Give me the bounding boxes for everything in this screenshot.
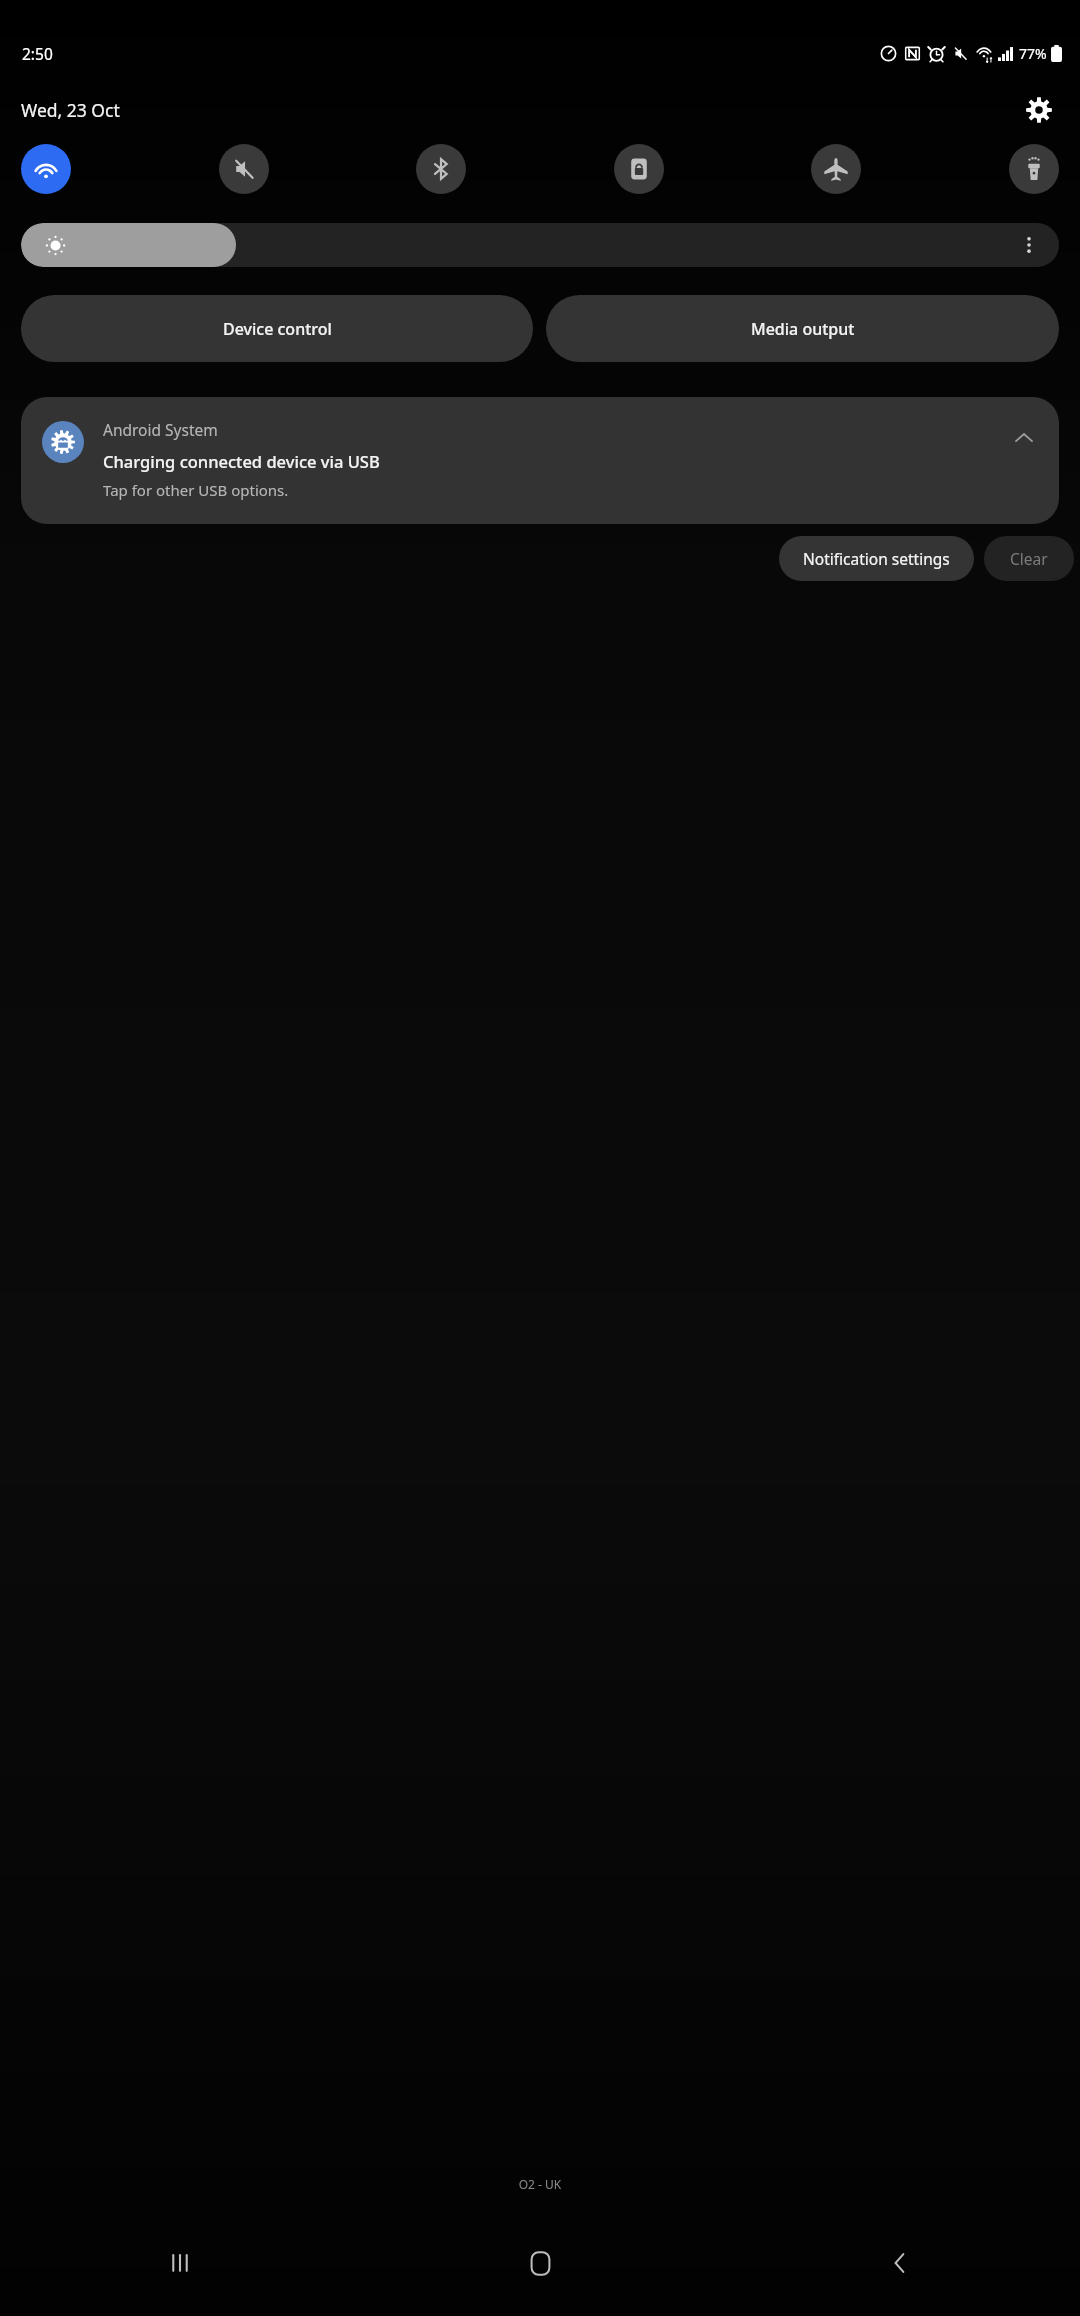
button[interactable]: Home — [360, 2234, 720, 2292]
staticText: 77% — [1019, 44, 1047, 63]
staticText: Tap for other USB options. — [103, 480, 289, 500]
staticText: 2:50 — [22, 43, 53, 64]
button[interactable]: Wi-Fi — [21, 144, 71, 194]
button[interactable]: Notification settings — [779, 536, 974, 581]
staticText: Clear — [1010, 548, 1048, 569]
staticText: Android System — [103, 419, 218, 440]
button[interactable]: Settings — [1019, 90, 1059, 130]
button[interactable]: Media output — [546, 295, 1059, 362]
button[interactable]: Device control — [21, 295, 533, 362]
button[interactable]: Recents — [0, 2234, 360, 2292]
button[interactable]: Clear — [984, 536, 1074, 581]
button[interactable]: Bluetooth — [416, 144, 466, 194]
button[interactable]: Back — [720, 2234, 1080, 2292]
button[interactable]: Flight mode — [811, 144, 861, 194]
button[interactable]: Brightness — [21, 223, 1059, 267]
staticText: Device control — [223, 318, 332, 340]
button[interactable]: More options — [1013, 229, 1045, 261]
button[interactable]: Android System — [21, 397, 1059, 524]
staticText: Notification settings — [803, 548, 950, 569]
staticText: Wed, 23 Oct — [21, 98, 120, 122]
button[interactable]: Sound off — [219, 144, 269, 194]
staticText: Media output — [751, 318, 855, 340]
button[interactable]: Auto rotate lock — [614, 144, 664, 194]
staticText: Charging connected device via USB — [103, 450, 380, 472]
button[interactable]: Torch — [1009, 144, 1059, 194]
button[interactable]: Collapse — [1007, 421, 1041, 455]
staticText: O2 - UK — [0, 2176, 1080, 2192]
